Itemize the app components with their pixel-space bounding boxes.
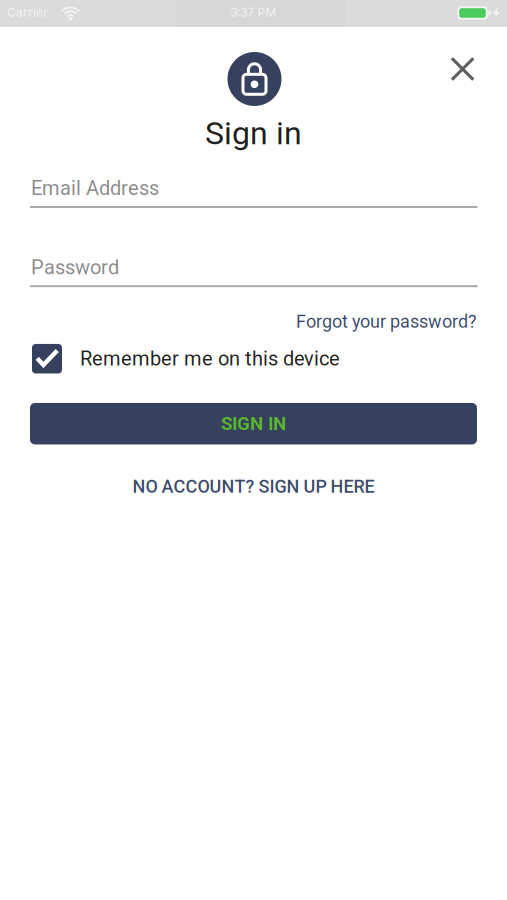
- staticText: Email Address: [31, 176, 159, 200]
- staticText: Carrier: [7, 5, 48, 20]
- staticText: 3:37 PM: [230, 5, 276, 20]
- textField[interactable]: Email Address: [0, 161, 507, 221]
- staticText: SIGN IN: [221, 413, 286, 435]
- staticText: Remember me on this device: [80, 347, 340, 370]
- button[interactable]: SIGN IN: [30, 403, 477, 444]
- button[interactable]: Close: [440, 46, 485, 92]
- button[interactable]: NO ACCOUNT? SIGN UP HERE: [132, 476, 374, 497]
- button[interactable]: Forgot your password?: [296, 311, 477, 332]
- staticText: Password: [31, 256, 119, 279]
- textField[interactable]: Password: [0, 240, 507, 300]
- button[interactable]: Remember me on this device: [0, 344, 507, 373]
- staticText: Forgot your password?: [296, 311, 477, 332]
- staticText: Sign in: [205, 115, 302, 152]
- staticText: NO ACCOUNT? SIGN UP HERE: [132, 476, 374, 497]
